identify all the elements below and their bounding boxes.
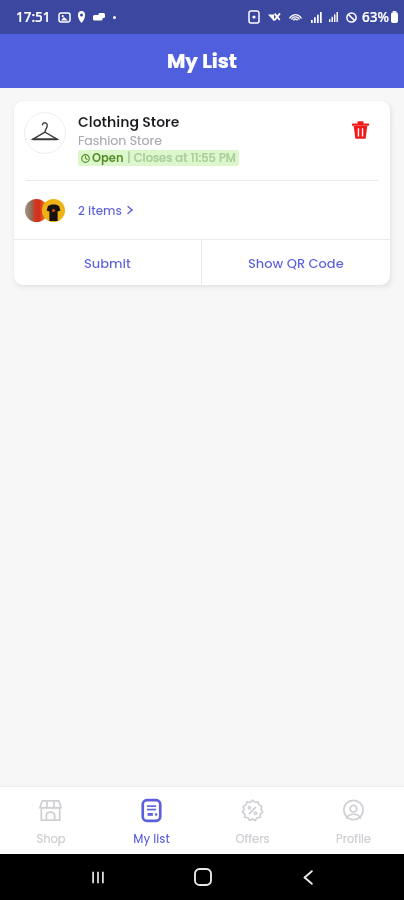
staticText: Shop [36, 831, 66, 847]
button[interactable]: Submit [14, 240, 201, 285]
staticText: My list [133, 831, 170, 847]
staticText: Show QR Code [248, 254, 344, 272]
button[interactable]: Shop [0, 787, 101, 854]
staticText: 17:51 [16, 8, 51, 26]
staticText: Profile [336, 831, 371, 847]
staticText: My List [167, 47, 237, 75]
button[interactable]: Offers [202, 787, 303, 854]
button[interactable]: 2 items [14, 181, 390, 239]
staticText: 2 items [78, 202, 122, 219]
staticText: Fashion Store [78, 132, 162, 149]
button[interactable]: My list [101, 787, 202, 854]
staticText: Offers [235, 831, 270, 847]
staticText: Clothing Store [78, 112, 180, 132]
staticText: Submit [84, 254, 131, 272]
button[interactable]: Show QR Code [202, 240, 390, 285]
button[interactable]: Delete item [345, 115, 375, 145]
staticText: | Closes at 11:55 PM [124, 150, 236, 166]
staticText: 63% [362, 8, 389, 26]
staticText: Open [92, 150, 124, 166]
button[interactable]: Profile [303, 787, 404, 854]
